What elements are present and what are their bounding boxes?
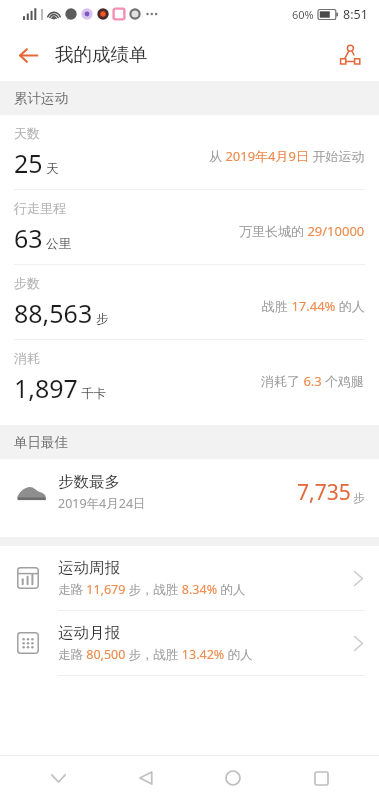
- button[interactable]: 步数: [0, 265, 379, 339]
- button[interactable]: 行走里程: [0, 190, 379, 264]
- button[interactable]: Back: [116, 756, 176, 800]
- button[interactable]: 步数最多: [0, 459, 379, 525]
- button[interactable]: Share: [330, 35, 370, 75]
- staticText: 消耗了 6.3 个鸡腿: [261, 372, 365, 390]
- button[interactable]: 运动月报: [0, 611, 379, 675]
- staticText: 万里长城的 29/10000: [239, 222, 365, 240]
- button[interactable]: 天数: [0, 115, 379, 189]
- staticText: 步: [353, 491, 365, 505]
- staticText: 消耗: [14, 350, 40, 366]
- staticText: 天: [46, 161, 59, 177]
- staticText: 累计运动: [14, 90, 68, 107]
- button[interactable]: 运动周报: [0, 546, 379, 610]
- staticText: 从 2019年4月9日 开始运动: [209, 147, 365, 165]
- staticText: 步数最多: [58, 472, 120, 492]
- button[interactable]: Hide: [28, 756, 88, 800]
- staticText: 60%: [292, 7, 314, 22]
- button[interactable]: Back: [8, 35, 48, 75]
- button[interactable]: Recents: [291, 756, 351, 800]
- button[interactable]: 消耗: [0, 340, 379, 414]
- staticText: 战胜 17.44% 的人: [262, 297, 365, 315]
- staticText: 千卡: [81, 386, 106, 402]
- staticText: 1,897: [14, 371, 78, 405]
- staticText: 运动月报: [58, 623, 120, 643]
- staticText: 2019年4月24日: [58, 495, 146, 512]
- staticText: 单日最佳: [14, 434, 68, 451]
- staticText: 公里: [46, 236, 71, 252]
- staticText: 63: [14, 221, 43, 255]
- staticText: 7,735: [297, 478, 351, 507]
- staticText: 行走里程: [14, 200, 66, 216]
- staticText: 25: [14, 146, 43, 180]
- staticText: 运动周报: [58, 558, 120, 578]
- staticText: 我的成绩单: [55, 43, 148, 66]
- button[interactable]: Home: [203, 756, 263, 800]
- staticText: 走路 80,500 步，战胜 13.42% 的人: [58, 646, 253, 663]
- staticText: 步数: [14, 275, 40, 291]
- staticText: 88,563: [14, 296, 93, 330]
- staticText: 步: [96, 311, 109, 327]
- staticText: 走路 11,679 步，战胜 8.34% 的人: [58, 581, 246, 598]
- staticText: 8:51: [343, 6, 368, 23]
- staticText: 天数: [14, 125, 40, 141]
